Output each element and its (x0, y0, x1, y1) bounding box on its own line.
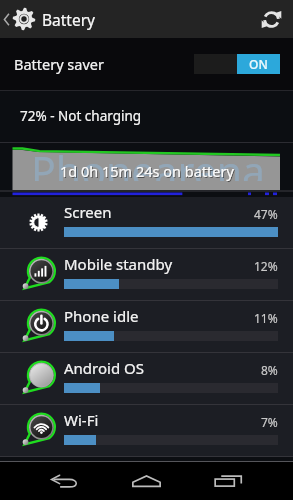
staticText: Phone idle (64, 306, 139, 326)
staticText: Mobile standby (64, 254, 173, 274)
button[interactable]: Phone idle (0, 301, 293, 353)
button[interactable]: Back (0, 0, 102, 38)
staticText: 72% - Not charging (20, 107, 142, 125)
staticText: ON (249, 56, 268, 72)
button[interactable]: Back (0, 462, 105, 500)
button[interactable]: Battery saver (0, 38, 293, 90)
staticText: Screen (64, 202, 112, 222)
staticText: 7% (261, 414, 278, 430)
staticText: Wi-Fi (64, 410, 99, 430)
staticText: 1d 0h 15m 24s on battery (60, 161, 234, 181)
button[interactable]: Screen (0, 197, 293, 249)
staticText: Battery saver (14, 54, 104, 74)
button[interactable]: Home (105, 462, 187, 500)
button[interactable]: Android OS (0, 353, 293, 405)
staticText: 47% (254, 206, 278, 222)
staticText: 12% (254, 258, 278, 274)
staticText: 8% (261, 362, 278, 378)
other: Back (3, 12, 10, 27)
staticText: 1d 0h 15m 24s on battery (61, 162, 235, 182)
button[interactable]: Mobile standby (0, 249, 293, 301)
staticText: Battery (42, 9, 96, 30)
staticText: Android OS (64, 358, 144, 378)
staticText: 11% (254, 310, 278, 326)
button[interactable]: Recents (187, 462, 293, 500)
button[interactable]: Refresh (251, 0, 291, 38)
button[interactable]: Wi-Fi (0, 405, 293, 457)
staticText: Phonearena (31, 151, 265, 181)
